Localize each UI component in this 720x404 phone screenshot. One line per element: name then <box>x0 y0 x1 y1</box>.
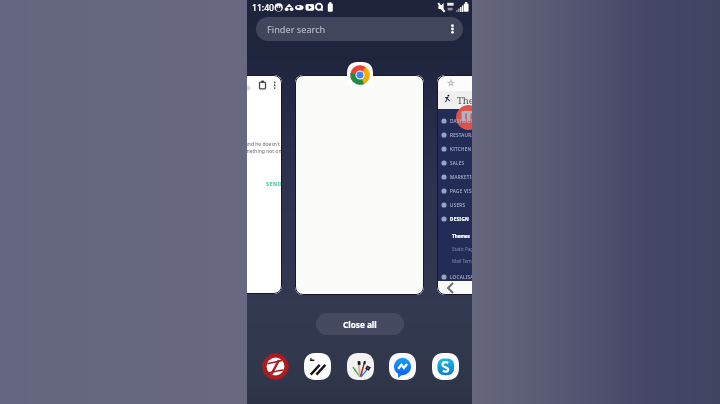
staticText: USERS <box>450 202 466 208</box>
button[interactable]: Z app <box>262 353 289 380</box>
button[interactable]: Close all <box>316 313 404 335</box>
staticText: LOCALISATION <box>450 274 472 280</box>
button[interactable]: Messenger <box>389 353 416 380</box>
button[interactable]: Notes <box>304 353 331 380</box>
staticText: Static Pages <box>452 246 472 252</box>
staticText: DESIGN <box>450 216 470 222</box>
staticText: Mail Templates <box>452 258 472 264</box>
staticText: PAGE VISITS <box>450 188 472 194</box>
staticText: and he doesn't mething not on <box>247 141 282 155</box>
staticText: KITCHEN <box>450 146 472 152</box>
button[interactable]: Finder search <box>256 17 463 41</box>
button[interactable]: and he doesn't mething not on <box>247 75 282 294</box>
staticText: 11:40 <box>252 2 275 14</box>
button[interactable]: Them <box>437 75 472 295</box>
staticText: Finder search <box>267 23 326 36</box>
staticText: MARKETING <box>450 174 472 180</box>
staticText: Them <box>457 94 472 107</box>
button[interactable] <box>295 75 424 295</box>
staticText: Themes <box>452 233 470 239</box>
staticText: Close all <box>343 319 377 330</box>
button[interactable]: Art <box>347 353 374 380</box>
staticText: RESTAURANT <box>450 132 472 138</box>
button[interactable]: Chrome <box>347 62 373 88</box>
button[interactable]: Skype <box>432 353 459 380</box>
staticText: SEND <box>266 180 282 187</box>
staticText: OD TR <box>461 121 472 127</box>
staticText: DASHBOARD <box>450 118 472 124</box>
staticText: SALES <box>450 160 465 166</box>
